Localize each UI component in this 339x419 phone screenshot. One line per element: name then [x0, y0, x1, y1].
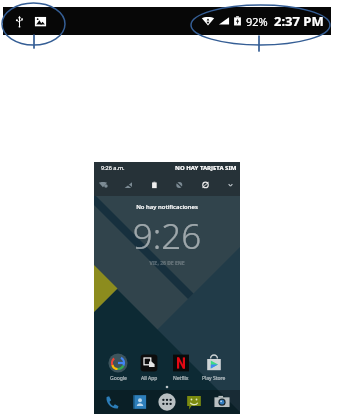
staticText: 9:26 a.m. — [101, 164, 125, 171]
staticText: Netflix — [173, 375, 189, 382]
staticText: NO HAY TARJETA SIM — [175, 164, 237, 172]
button[interactable]: Phone — [103, 393, 121, 411]
button[interactable]: Expand — [225, 180, 236, 191]
button[interactable]: Location — [174, 180, 185, 191]
button[interactable]: Google — [108, 353, 128, 382]
other: Screenshot captured — [34, 15, 47, 28]
button[interactable]: All App — [139, 353, 159, 382]
staticText: No hay notificaciones — [94, 203, 240, 211]
button[interactable]: Contacts — [131, 393, 149, 411]
staticText: All App — [141, 375, 158, 382]
button[interactable]: Messaging — [185, 393, 203, 411]
staticText: Google — [110, 375, 127, 382]
button[interactable]: Netflix — [171, 353, 191, 382]
button[interactable]: Wi-Fi — [98, 180, 109, 191]
button[interactable]: Camera — [213, 393, 231, 411]
button[interactable]: Battery — [149, 180, 160, 191]
staticText: 92% — [246, 14, 268, 29]
other: USB connected — [15, 15, 24, 28]
staticText: 2:37 PM — [274, 12, 324, 30]
button[interactable]: All apps — [158, 393, 176, 411]
staticText: Play Store — [202, 375, 226, 382]
button[interactable]: Play Store — [202, 353, 226, 382]
staticText: VIE, 26 DE ENE — [94, 260, 240, 267]
button[interactable]: Mobile data — [123, 180, 134, 191]
staticText: 9:26 — [94, 212, 240, 260]
button[interactable]: Auto rotate — [200, 180, 211, 191]
